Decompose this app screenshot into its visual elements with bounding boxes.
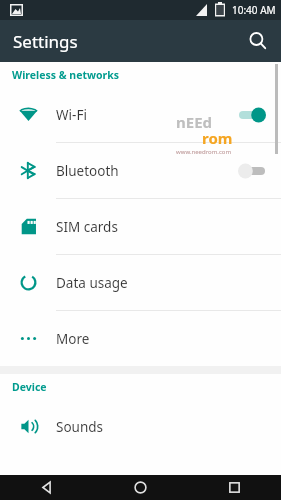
staticText: Settings: [13, 30, 78, 53]
staticText: Device: [12, 380, 47, 394]
button[interactable]: Recents: [187, 475, 281, 500]
staticText: rom: [202, 128, 233, 148]
staticText: SIM cards: [56, 218, 281, 236]
staticText: Wireless & networks: [12, 68, 119, 82]
button[interactable]: Back: [0, 475, 93, 500]
staticText: Wi-Fi: [56, 106, 237, 124]
button[interactable]: More: [0, 311, 281, 366]
staticText: Bluetooth: [56, 162, 237, 180]
staticText: Sounds: [56, 418, 281, 436]
staticText: nEEd: [176, 112, 213, 132]
button[interactable]: Sounds: [0, 399, 281, 454]
staticText: www.needrom.com: [176, 148, 232, 156]
button[interactable]: SIM cards: [0, 199, 281, 255]
button[interactable]: Bluetooth: [0, 143, 281, 199]
button[interactable]: Data usage: [0, 255, 281, 311]
staticText: 10:40 AM: [232, 3, 276, 17]
button[interactable]: Wi-Fi: [0, 87, 281, 143]
staticText: More: [56, 330, 281, 348]
button[interactable]: Home: [93, 475, 187, 500]
staticText: Data usage: [56, 274, 281, 292]
button[interactable]: Search: [241, 24, 275, 58]
